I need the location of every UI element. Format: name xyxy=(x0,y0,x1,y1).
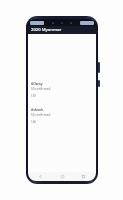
staticText: 2020 Myanmar xyxy=(31,27,62,33)
staticText: 146 xyxy=(31,120,36,124)
button[interactable]: Home xyxy=(59,173,66,180)
button[interactable]: 2020 Myanmar xyxy=(28,26,96,34)
button[interactable]: Back xyxy=(37,173,44,180)
button[interactable]: #Oway xyxy=(28,80,96,101)
staticText: 50 confirmed xyxy=(31,87,51,91)
staticText: 149 xyxy=(31,94,36,98)
button[interactable]: Recents xyxy=(80,173,87,180)
staticText: 50 confirmed xyxy=(31,113,51,117)
button[interactable]: #shook xyxy=(28,106,96,127)
staticText: #Oway xyxy=(31,81,43,86)
staticText: #shook xyxy=(31,107,44,112)
